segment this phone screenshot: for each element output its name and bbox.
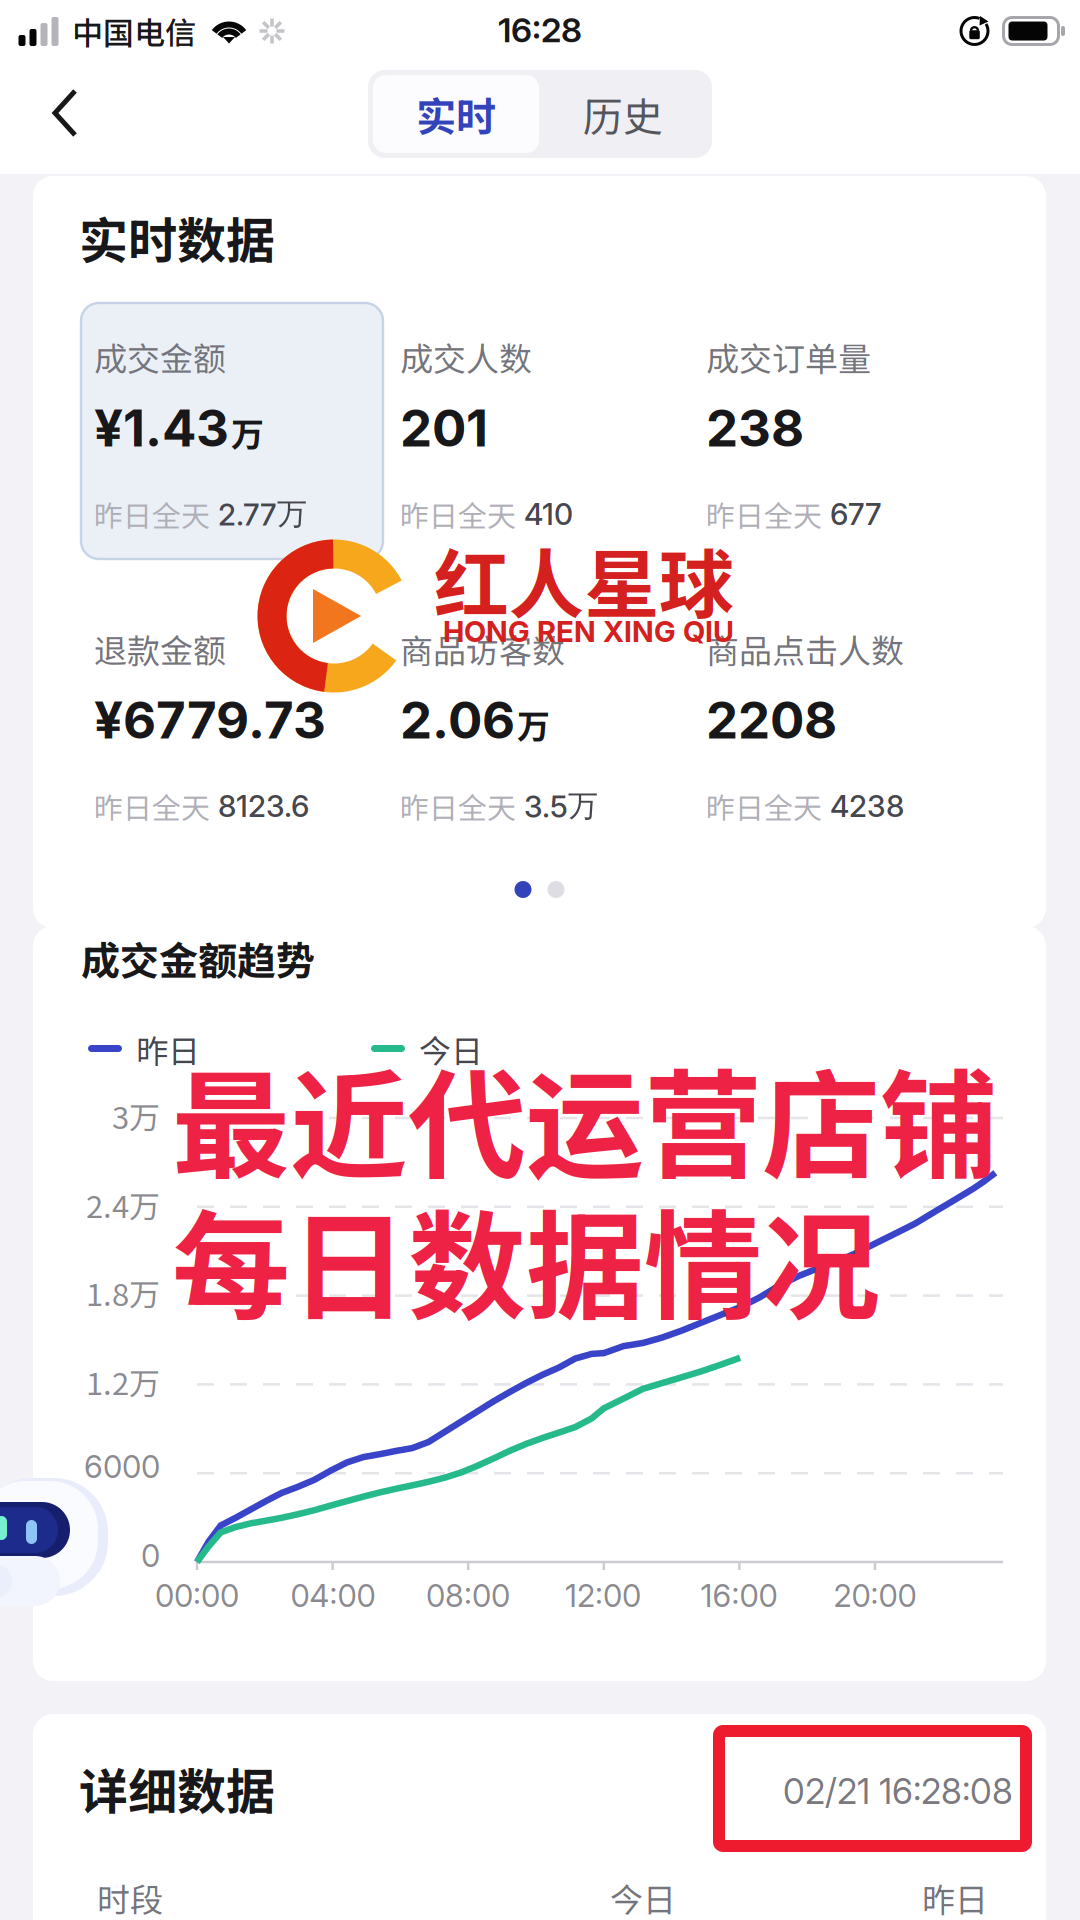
- staticText: 实时数据: [79, 202, 275, 273]
- staticText: 201: [400, 397, 488, 459]
- staticText: 昨日全天: [94, 785, 210, 827]
- staticText: 677: [830, 496, 882, 532]
- staticText: 20:00: [833, 1577, 916, 1614]
- staticText: 410: [524, 496, 573, 532]
- staticText: 02/21 16:28:08: [783, 1770, 1013, 1812]
- staticText: 1.2万: [86, 1359, 160, 1404]
- staticText: 昨日全天: [94, 493, 210, 535]
- staticText: 每日数据情况: [172, 1173, 880, 1344]
- button[interactable]: 历史: [539, 75, 707, 153]
- staticText: 昨日全天: [706, 493, 822, 535]
- button[interactable]: 实时: [373, 75, 539, 153]
- staticText: 万: [517, 700, 550, 748]
- button[interactable]: 返回: [9, 65, 121, 161]
- staticText: 8123.6: [218, 788, 309, 824]
- staticText: 退款金额: [94, 625, 226, 673]
- staticText: 成交金额: [94, 333, 226, 381]
- staticText: 2208: [706, 689, 837, 751]
- staticText: 历史: [583, 85, 663, 143]
- staticText: 成交人数: [400, 333, 532, 381]
- staticText: 中国电信: [72, 9, 196, 53]
- staticText: 3万: [112, 1093, 160, 1138]
- staticText: 详细数据: [79, 1753, 275, 1824]
- staticText: 00:00: [155, 1577, 239, 1614]
- staticText: 成交订单量: [706, 333, 871, 381]
- staticText: 2.77万: [218, 495, 307, 533]
- staticText: 2.4万: [86, 1182, 160, 1227]
- staticText: 红人星球: [434, 525, 734, 634]
- staticText: 6000: [84, 1448, 160, 1485]
- staticText: 最近代运营店铺: [172, 1032, 998, 1203]
- staticText: 0: [141, 1537, 160, 1574]
- staticText: 昨日: [136, 1026, 200, 1072]
- staticText: 实时: [416, 85, 496, 143]
- staticText: 12:00: [565, 1577, 641, 1614]
- staticText: HONG REN XING QIU: [443, 614, 734, 649]
- staticText: 时段: [97, 1874, 163, 1920]
- staticText: 238: [706, 397, 804, 459]
- staticText: 商品访客数: [400, 625, 565, 673]
- staticText: 4238: [830, 788, 904, 824]
- staticText: 万: [231, 408, 264, 456]
- staticText: 今日: [610, 1874, 676, 1920]
- staticText: 04:00: [290, 1577, 375, 1614]
- staticText: 昨日全天: [706, 785, 822, 827]
- staticText: 昨日全天: [400, 785, 516, 827]
- staticText: ¥1.43: [94, 397, 229, 459]
- staticText: 1.8万: [86, 1270, 160, 1315]
- staticText: 2.06: [400, 689, 515, 751]
- staticText: 16:28: [498, 9, 582, 50]
- staticText: 08:00: [426, 1577, 510, 1614]
- staticText: 3.5万: [524, 787, 598, 825]
- staticText: 昨日: [922, 1874, 988, 1920]
- staticText: 16:00: [700, 1577, 777, 1614]
- staticText: 今日: [419, 1026, 483, 1072]
- staticText: 昨日全天: [400, 493, 516, 535]
- staticText: ¥6779.73: [94, 689, 326, 751]
- staticText: 成交金额趋势: [81, 930, 315, 986]
- staticText: 商品点击人数: [706, 625, 904, 673]
